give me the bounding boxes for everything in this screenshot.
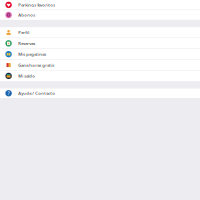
staticText: Mi saldo — [18, 73, 35, 79]
staticText: Gana horas gratis — [18, 62, 54, 68]
button[interactable]: Mi saldo — [0, 71, 200, 81]
staticText: Perfil — [18, 30, 29, 35]
button[interactable]: Perfil — [0, 27, 200, 38]
button[interactable]: ? — [0, 89, 200, 98]
staticText: Mis pegatinas — [18, 51, 46, 57]
staticText: Reservas — [18, 40, 35, 46]
staticText: Abonos — [18, 12, 35, 18]
button[interactable]: Parkings favoritos — [0, 0, 200, 10]
button[interactable]: Mis pegatinas — [0, 49, 200, 59]
staticText: Ayuda / Contacto — [18, 90, 55, 96]
button[interactable]: Gana horas gratis — [0, 60, 200, 70]
staticText: ? — [8, 90, 10, 97]
button[interactable]: Abonos — [0, 10, 200, 20]
button[interactable]: Reservas — [0, 38, 200, 49]
staticText: Parkings favoritos — [18, 2, 55, 8]
